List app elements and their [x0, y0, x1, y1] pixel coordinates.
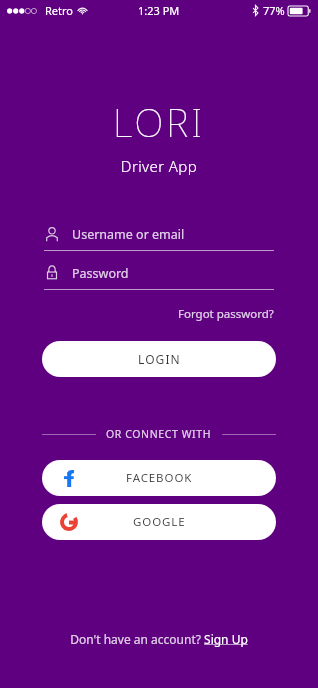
button[interactable]: FACEBOOK — [42, 460, 276, 496]
button[interactable]: Forgot password? — [176, 304, 276, 324]
button[interactable]: GOOGLE — [42, 504, 276, 540]
staticText: LORI — [0, 96, 318, 148]
staticText: GOOGLE — [133, 514, 186, 530]
button[interactable]: Don't have an account? Sign Up — [0, 625, 318, 653]
staticText: Password — [72, 265, 129, 282]
staticText: FACEBOOK — [126, 470, 193, 486]
staticText: Driver App — [0, 156, 318, 176]
staticText: 1:23 PM — [138, 3, 180, 18]
button[interactable]: Username or email — [44, 221, 274, 251]
staticText: 77% — [263, 3, 285, 18]
button[interactable]: LOGIN — [42, 341, 276, 377]
staticText: OR CONNECT WITH — [106, 427, 212, 441]
staticText: Don't have an account? Sign Up — [70, 631, 248, 647]
staticText: Forgot password? — [178, 306, 274, 322]
staticText: LOGIN — [138, 351, 181, 367]
button[interactable]: Password — [44, 260, 274, 290]
staticText: Username or email — [72, 226, 185, 243]
staticText: Retro — [45, 3, 73, 18]
